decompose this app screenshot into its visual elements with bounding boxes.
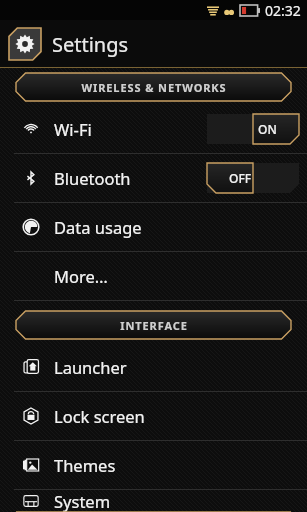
staticText: Data usage <box>54 216 299 238</box>
button[interactable]: Bluetooth <box>0 154 307 202</box>
staticText: ON <box>258 121 277 137</box>
staticText: 02:32 <box>265 1 301 20</box>
other: On <box>207 114 299 144</box>
staticText: Lock screen <box>54 405 299 427</box>
button[interactable]: Data usage <box>0 203 307 251</box>
button[interactable]: More… <box>0 252 307 300</box>
button[interactable]: Wi-Fi <box>0 105 307 153</box>
button[interactable]: Lock screen <box>0 392 307 440</box>
other: Off <box>207 163 299 193</box>
staticText: Bluetooth <box>54 167 207 189</box>
staticText: INTERFACE <box>120 318 188 333</box>
button[interactable]: Themes <box>0 441 307 489</box>
staticText: Settings <box>52 31 129 58</box>
staticText: Wi-Fi <box>54 118 207 140</box>
staticText: OFF <box>229 170 252 186</box>
staticText: Launcher <box>54 356 299 378</box>
button[interactable]: Settings <box>9 28 41 60</box>
button[interactable]: Launcher <box>0 343 307 391</box>
button[interactable]: System <box>0 490 307 512</box>
staticText: More… <box>54 265 299 287</box>
staticText: Themes <box>54 454 299 476</box>
staticText: WIRELESS & NETWORKS <box>81 80 227 95</box>
staticText: System <box>54 490 299 512</box>
